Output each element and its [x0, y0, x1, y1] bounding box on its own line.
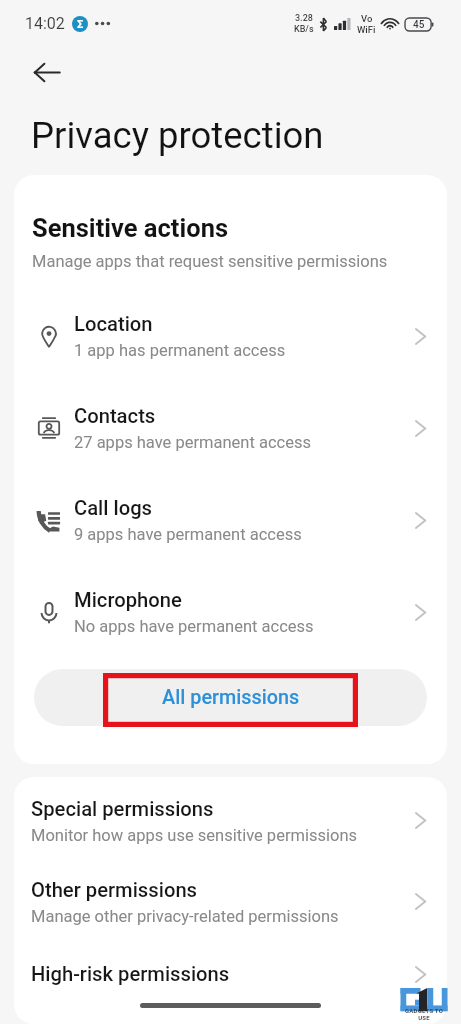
staticText: 14:02 [25, 14, 65, 33]
staticText: GADGETS TO USE [399, 1007, 449, 1021]
staticText: No apps have permanent access [74, 617, 314, 636]
staticText: Σ [77, 18, 84, 31]
button[interactable]: High-risk permissions [14, 942, 447, 1006]
button[interactable]: Location [14, 290, 447, 382]
button[interactable]: Microphone [14, 566, 447, 658]
staticText: High-risk permissions [31, 962, 230, 986]
staticText: Contacts [74, 404, 156, 428]
button[interactable]: All permissions [34, 669, 427, 726]
staticText: 3.28 [295, 13, 313, 24]
staticText: Other permissions [31, 878, 198, 902]
staticText: KB/s [294, 24, 314, 35]
staticText: Special permissions [31, 797, 214, 821]
staticText: Microphone [74, 588, 182, 612]
button[interactable]: Contacts [14, 382, 447, 474]
staticText: WiFi [357, 24, 376, 35]
staticText: Manage other privacy-related permissions [31, 907, 339, 926]
staticText: 1 app has permanent access [74, 341, 286, 360]
staticText: 45 [413, 19, 425, 31]
staticText: Sensitive actions [32, 213, 229, 243]
staticText: 27 apps have permanent access [74, 433, 311, 452]
staticText: Location [74, 312, 153, 336]
staticText: All permissions [162, 686, 300, 709]
staticText: 9 apps have permanent access [74, 525, 302, 544]
staticText: Vo [361, 13, 373, 24]
button[interactable]: Special permissions [14, 780, 447, 861]
staticText: Monitor how apps use sensitive permissio… [31, 826, 358, 845]
button[interactable]: Call logs [14, 474, 447, 566]
button[interactable]: Other permissions [14, 861, 447, 942]
button[interactable]: Back [28, 53, 66, 91]
staticText: Manage apps that request sensitive permi… [32, 252, 388, 271]
staticText: Privacy protection [31, 114, 324, 157]
staticText: Call logs [74, 496, 152, 520]
